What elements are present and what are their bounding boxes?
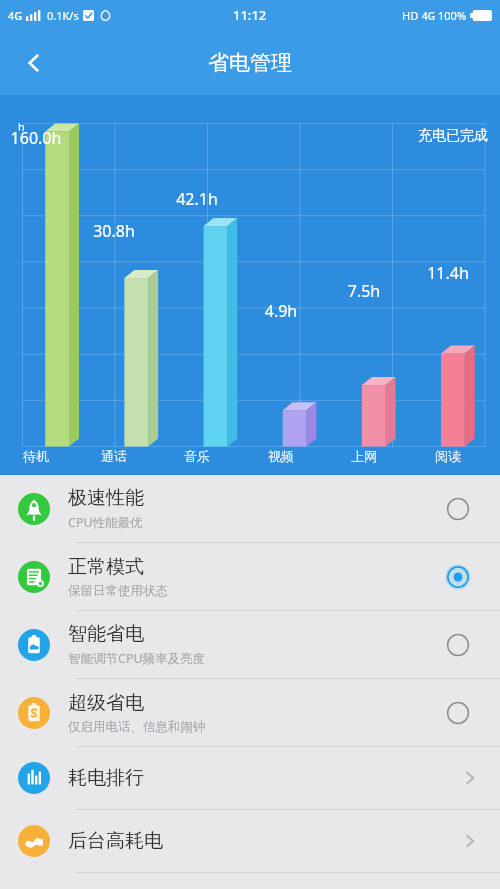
staticText: 4G [8,8,23,23]
staticText: 待机 [6,448,66,464]
staticText: 极速性能 [68,486,144,510]
staticText: 耗电排行 [68,766,460,790]
staticText: 42.1h [167,188,227,210]
staticText: 7.5h [334,280,394,302]
staticText: 4G [422,9,435,23]
staticText: 音乐 [167,448,227,464]
staticText: 省电管理 [208,50,292,76]
staticText: 充电已完成 [418,127,488,145]
staticText: 超级省电 [68,691,144,715]
staticText: 0.1K/s [47,8,79,23]
staticText: 后台高耗电 [68,829,460,853]
staticText: CPU性能最优 [68,514,143,531]
staticText: 正常模式 [68,555,144,579]
staticText: 11.4h [418,262,478,284]
staticText: 仅启用电话、信息和闹钟 [68,719,206,735]
button[interactable]: 智能省电 [0,611,500,678]
staticText: 100% [438,8,467,23]
button[interactable]: 正常模式 [0,543,500,610]
staticText: 上网 [334,448,394,464]
staticText: 11:12 [233,6,267,24]
staticText: 4.9h [251,300,311,322]
staticText: 通话 [84,448,144,464]
staticText: 智能省电 [68,622,144,646]
staticText: 智能调节CPU频率及亮度 [68,650,206,667]
staticText: 阅读 [418,448,478,464]
button[interactable]: 后台高耗电 [0,810,500,872]
button[interactable]: Back [8,37,60,89]
button[interactable]: 耗电排行 [0,747,500,809]
staticText: HD [402,8,419,23]
staticText: 160.0h [6,127,66,149]
staticText: 30.8h [84,220,144,242]
button[interactable]: 极速性能 [0,475,500,542]
staticText: 视频 [251,448,311,464]
button[interactable]: 超级省电 [0,679,500,746]
staticText: 保留日常使用状态 [68,583,168,599]
staticText: h [18,119,25,134]
